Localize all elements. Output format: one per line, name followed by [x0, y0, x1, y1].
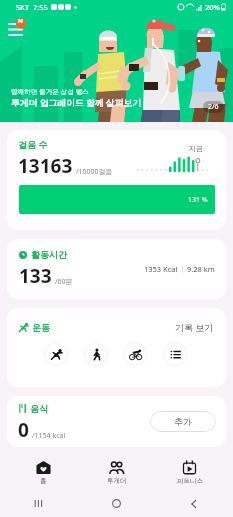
staticText: 지금: [189, 144, 203, 153]
staticText: 133: [19, 263, 52, 289]
button[interactable]: Recents: [0, 490, 77, 517]
staticText: 걸음 수: [18, 138, 48, 150]
button[interactable]: Walking: [84, 342, 108, 366]
button[interactable]: 음식: [7, 396, 226, 447]
staticText: 추가: [174, 416, 192, 427]
staticText: 기록 보기: [175, 321, 214, 333]
button[interactable]: 투게더: [80, 456, 153, 490]
button[interactable]: Running: [44, 342, 68, 366]
button[interactable]: Home: [77, 490, 155, 517]
staticText: /1154 kcal: [32, 431, 66, 441]
button[interactable]: 피트니스: [153, 456, 226, 490]
staticText: 9.28 km: [187, 264, 215, 274]
button[interactable]: 추가: [150, 411, 216, 432]
button[interactable]: 활동시간: [7, 239, 226, 299]
staticText: 홈: [40, 477, 47, 485]
staticText: SKT 7:55: [16, 2, 48, 12]
staticText: 2/6: [208, 102, 219, 112]
button[interactable]: More: [163, 342, 187, 366]
staticText: /10000걸음: [76, 167, 113, 177]
staticText: 0: [18, 417, 29, 443]
staticText: /60분: [55, 277, 73, 287]
button[interactable]: Back: [155, 490, 233, 517]
staticText: 1353 Kcal: [144, 264, 178, 274]
staticText: 함께하면 즐거운 삼성 헬스: [11, 87, 89, 96]
button[interactable]: 운동: [7, 308, 226, 387]
button[interactable]: Menu: [8, 20, 28, 40]
button[interactable]: Cycling: [123, 342, 147, 366]
staticText: 투게더 업그레이드 함께 살펴보기: [11, 97, 142, 109]
staticText: 13163: [18, 153, 73, 179]
staticText: 운동: [32, 322, 50, 333]
staticText: N: [18, 17, 23, 25]
button[interactable]: 홈: [7, 456, 80, 490]
staticText: 활동시간: [31, 249, 67, 260]
button[interactable]: 걸음 수: [7, 130, 226, 230]
staticText: 음식: [30, 403, 48, 414]
staticText: 투게더: [107, 477, 127, 485]
staticText: 20%: [205, 2, 220, 12]
staticText: 피트니스: [177, 477, 203, 485]
staticText: 131 %: [188, 195, 208, 205]
button[interactable]: 기록 보기: [173, 319, 216, 335]
